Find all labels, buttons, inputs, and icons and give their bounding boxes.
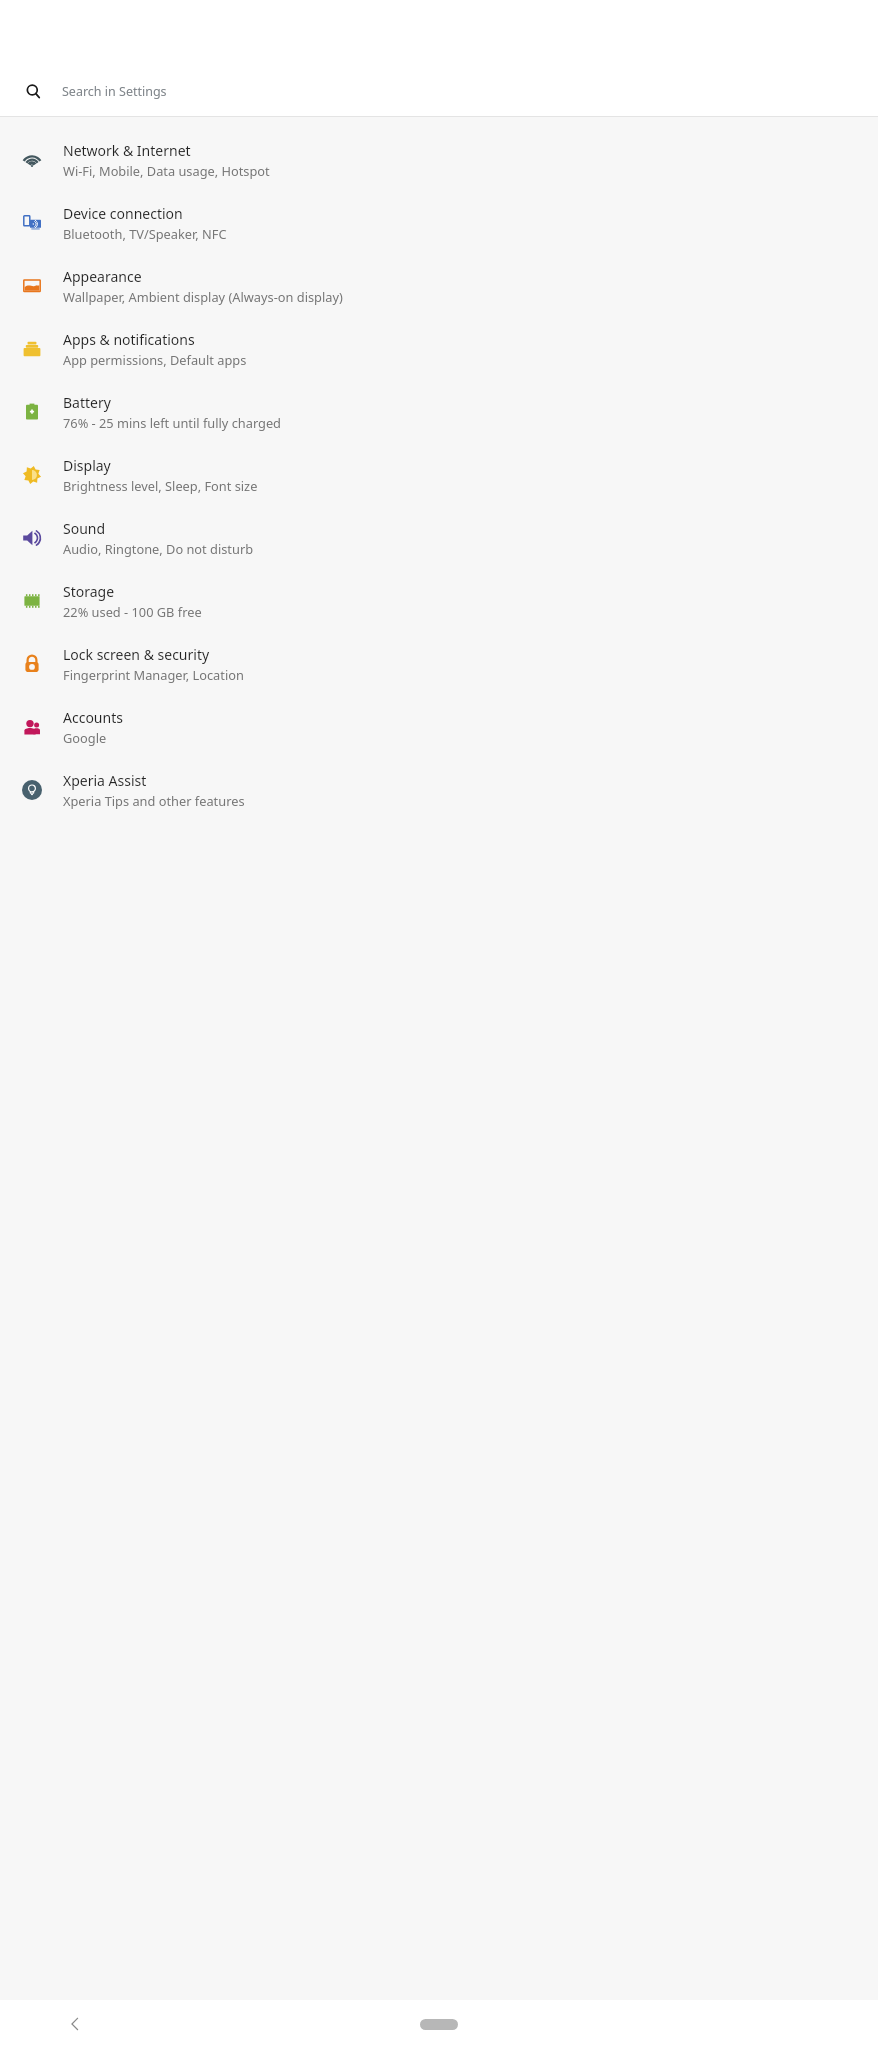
staticText: Wallpaper, Ambient display (Always-on di… — [63, 288, 343, 305]
button[interactable]: Home — [416, 2013, 462, 2035]
staticText: Battery — [63, 393, 111, 412]
button[interactable]: Accounts — [0, 695, 878, 758]
staticText: Xperia Tips and other features — [63, 792, 245, 809]
staticText: Bluetooth, TV/Speaker, NFC — [63, 225, 227, 242]
staticText: 22% used - 100 GB free — [63, 603, 202, 620]
staticText: Device connection — [63, 204, 183, 223]
button[interactable]: Xperia Assist — [0, 758, 878, 821]
staticText: Apps & notifications — [63, 330, 195, 349]
button[interactable]: Device connection — [0, 191, 878, 254]
button[interactable]: Search — [12, 76, 866, 107]
staticText: Fingerprint Manager, Location — [63, 666, 244, 683]
button[interactable]: Network & Internet — [0, 128, 878, 191]
button[interactable]: Appearance — [0, 254, 878, 317]
staticText: Sound — [63, 519, 106, 538]
staticText: Storage — [63, 582, 115, 601]
staticText: Audio, Ringtone, Do not disturb — [63, 540, 254, 557]
button[interactable]: Back — [58, 2007, 92, 2041]
button[interactable]: Apps & notifications — [0, 317, 878, 380]
button[interactable]: Storage — [0, 569, 878, 632]
staticText: Xperia Assist — [63, 771, 147, 790]
staticText: Search in Settings — [62, 83, 167, 100]
staticText: Wi-Fi, Mobile, Data usage, Hotspot — [63, 162, 270, 179]
button[interactable]: Lock screen & security — [0, 632, 878, 695]
staticText: Accounts — [63, 708, 123, 727]
staticText: Display — [63, 456, 111, 475]
other: Search — [26, 84, 41, 99]
staticText: Network & Internet — [63, 141, 191, 160]
staticText: 76% - 25 mins left until fully charged — [63, 414, 281, 431]
staticText: Lock screen & security — [63, 645, 210, 664]
staticText: Brightness level, Sleep, Font size — [63, 477, 258, 494]
staticText: App permissions, Default apps — [63, 351, 247, 368]
button[interactable]: Battery — [0, 380, 878, 443]
button[interactable]: Display — [0, 443, 878, 506]
staticText: Appearance — [63, 267, 142, 286]
button[interactable]: Sound — [0, 506, 878, 569]
staticText: Google — [63, 729, 107, 746]
